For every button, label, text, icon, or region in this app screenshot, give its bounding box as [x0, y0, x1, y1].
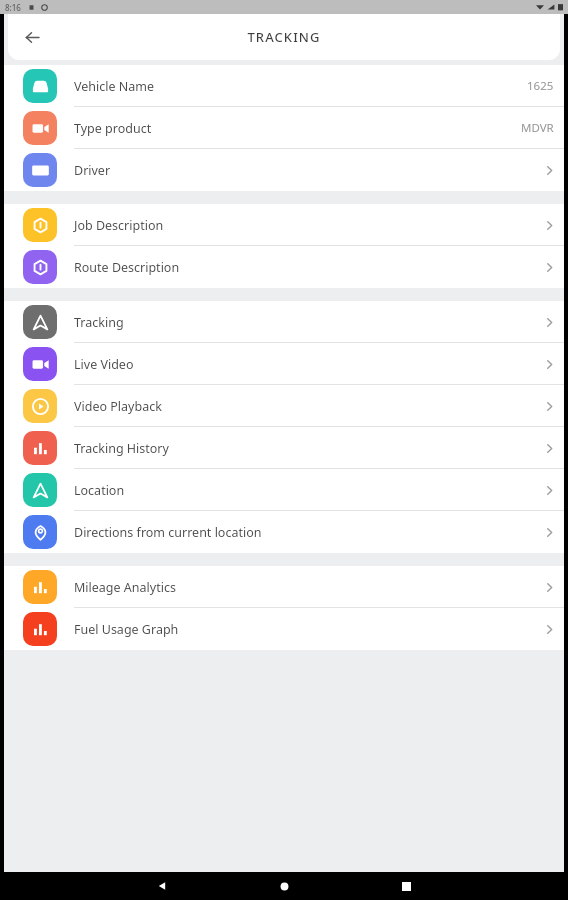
button[interactable]: Back	[149, 873, 175, 899]
button[interactable]: Back	[14, 19, 50, 55]
button[interactable]: Driver	[4, 149, 564, 191]
staticText: Mileage Analytics	[74, 579, 176, 596]
button[interactable]: Live Video	[4, 343, 564, 385]
button[interactable]: Job Description	[4, 204, 564, 246]
button[interactable]: Tracking History	[4, 427, 564, 469]
staticText: 1625	[527, 78, 554, 94]
staticText: Type product	[74, 120, 152, 137]
staticText: Directions from current location	[74, 524, 262, 541]
button[interactable]: Video Playback	[4, 385, 564, 427]
button[interactable]: Mileage Analytics	[4, 566, 564, 608]
button[interactable]: Location	[4, 469, 564, 511]
button[interactable]: Type product	[4, 107, 564, 149]
staticText: Location	[74, 482, 125, 499]
staticText: Route Description	[74, 259, 180, 276]
button[interactable]: Tracking	[4, 301, 564, 343]
staticText: 8:16	[5, 2, 21, 13]
button[interactable]: Fuel Usage Graph	[4, 608, 564, 650]
staticText: Video Playback	[74, 398, 162, 415]
staticText: Driver	[74, 162, 111, 179]
staticText: Vehicle Name	[74, 78, 155, 95]
button[interactable]: Vehicle Name	[4, 65, 564, 107]
button[interactable]: Route Description	[4, 246, 564, 288]
staticText: Tracking History	[74, 440, 169, 457]
staticText: Tracking	[74, 314, 124, 331]
staticText: MDVR	[521, 120, 554, 136]
staticText: Live Video	[74, 356, 134, 373]
staticText: Job Description	[74, 217, 164, 234]
staticText: Fuel Usage Graph	[74, 621, 179, 638]
button[interactable]: Recents	[393, 873, 419, 899]
button[interactable]: Directions from current location	[4, 511, 564, 553]
staticText: TRACKING	[247, 28, 321, 46]
button[interactable]: Home	[271, 873, 297, 899]
